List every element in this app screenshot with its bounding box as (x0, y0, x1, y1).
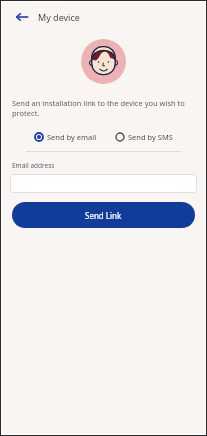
button[interactable]: Back (10, 5, 34, 29)
staticText: Send by email (47, 132, 97, 142)
staticText: Send Link (85, 210, 122, 221)
button[interactable]: Send by SMS (113, 130, 175, 144)
staticText: Email address (12, 161, 55, 170)
button[interactable]: Email address input (10, 174, 197, 193)
staticText: My device (38, 11, 80, 23)
staticText: Send an installation link to the device … (12, 98, 195, 118)
staticText: Send by SMS (128, 132, 173, 142)
button[interactable]: Send by email (32, 130, 99, 144)
button[interactable]: Send Link (12, 202, 195, 228)
